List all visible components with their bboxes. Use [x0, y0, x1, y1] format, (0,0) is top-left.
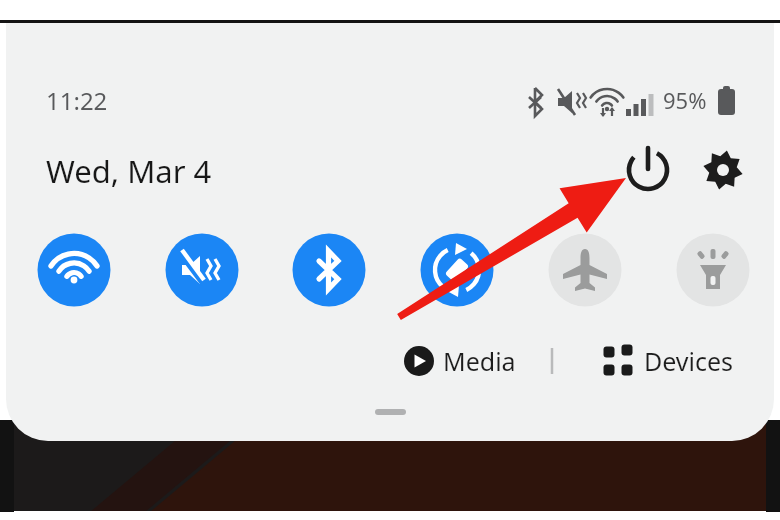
button[interactable]: Sound mode vibrate: [166, 234, 239, 307]
button[interactable]: Airplane mode: [549, 234, 622, 307]
button[interactable]: Settings: [704, 151, 744, 191]
button[interactable]: Power: [629, 151, 669, 191]
button[interactable]: [400, 340, 540, 384]
button[interactable]: Bluetooth: [293, 234, 366, 307]
button[interactable]: Auto rotate: [421, 234, 494, 307]
button[interactable]: Collapse panel: [360, 398, 420, 426]
button[interactable]: Wi-Fi: [38, 234, 111, 307]
button[interactable]: Flashlight: [677, 234, 750, 307]
button[interactable]: [598, 340, 748, 384]
